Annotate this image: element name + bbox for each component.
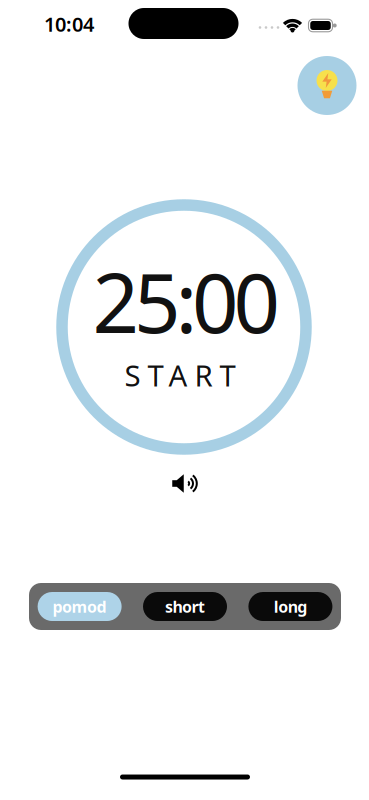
staticText: pomod [53, 596, 107, 617]
staticText: short [165, 596, 205, 617]
staticText: 25:00 [92, 247, 280, 355]
button[interactable]: Tips [297, 56, 356, 115]
button[interactable]: short [143, 592, 227, 621]
staticText: long [274, 596, 307, 617]
button[interactable]: Sound [169, 471, 199, 495]
staticText: START [124, 355, 235, 394]
staticText: 10:04 [44, 11, 94, 37]
button[interactable]: START [124, 355, 235, 394]
button[interactable]: pomod [38, 592, 122, 621]
button[interactable]: long [248, 592, 332, 621]
